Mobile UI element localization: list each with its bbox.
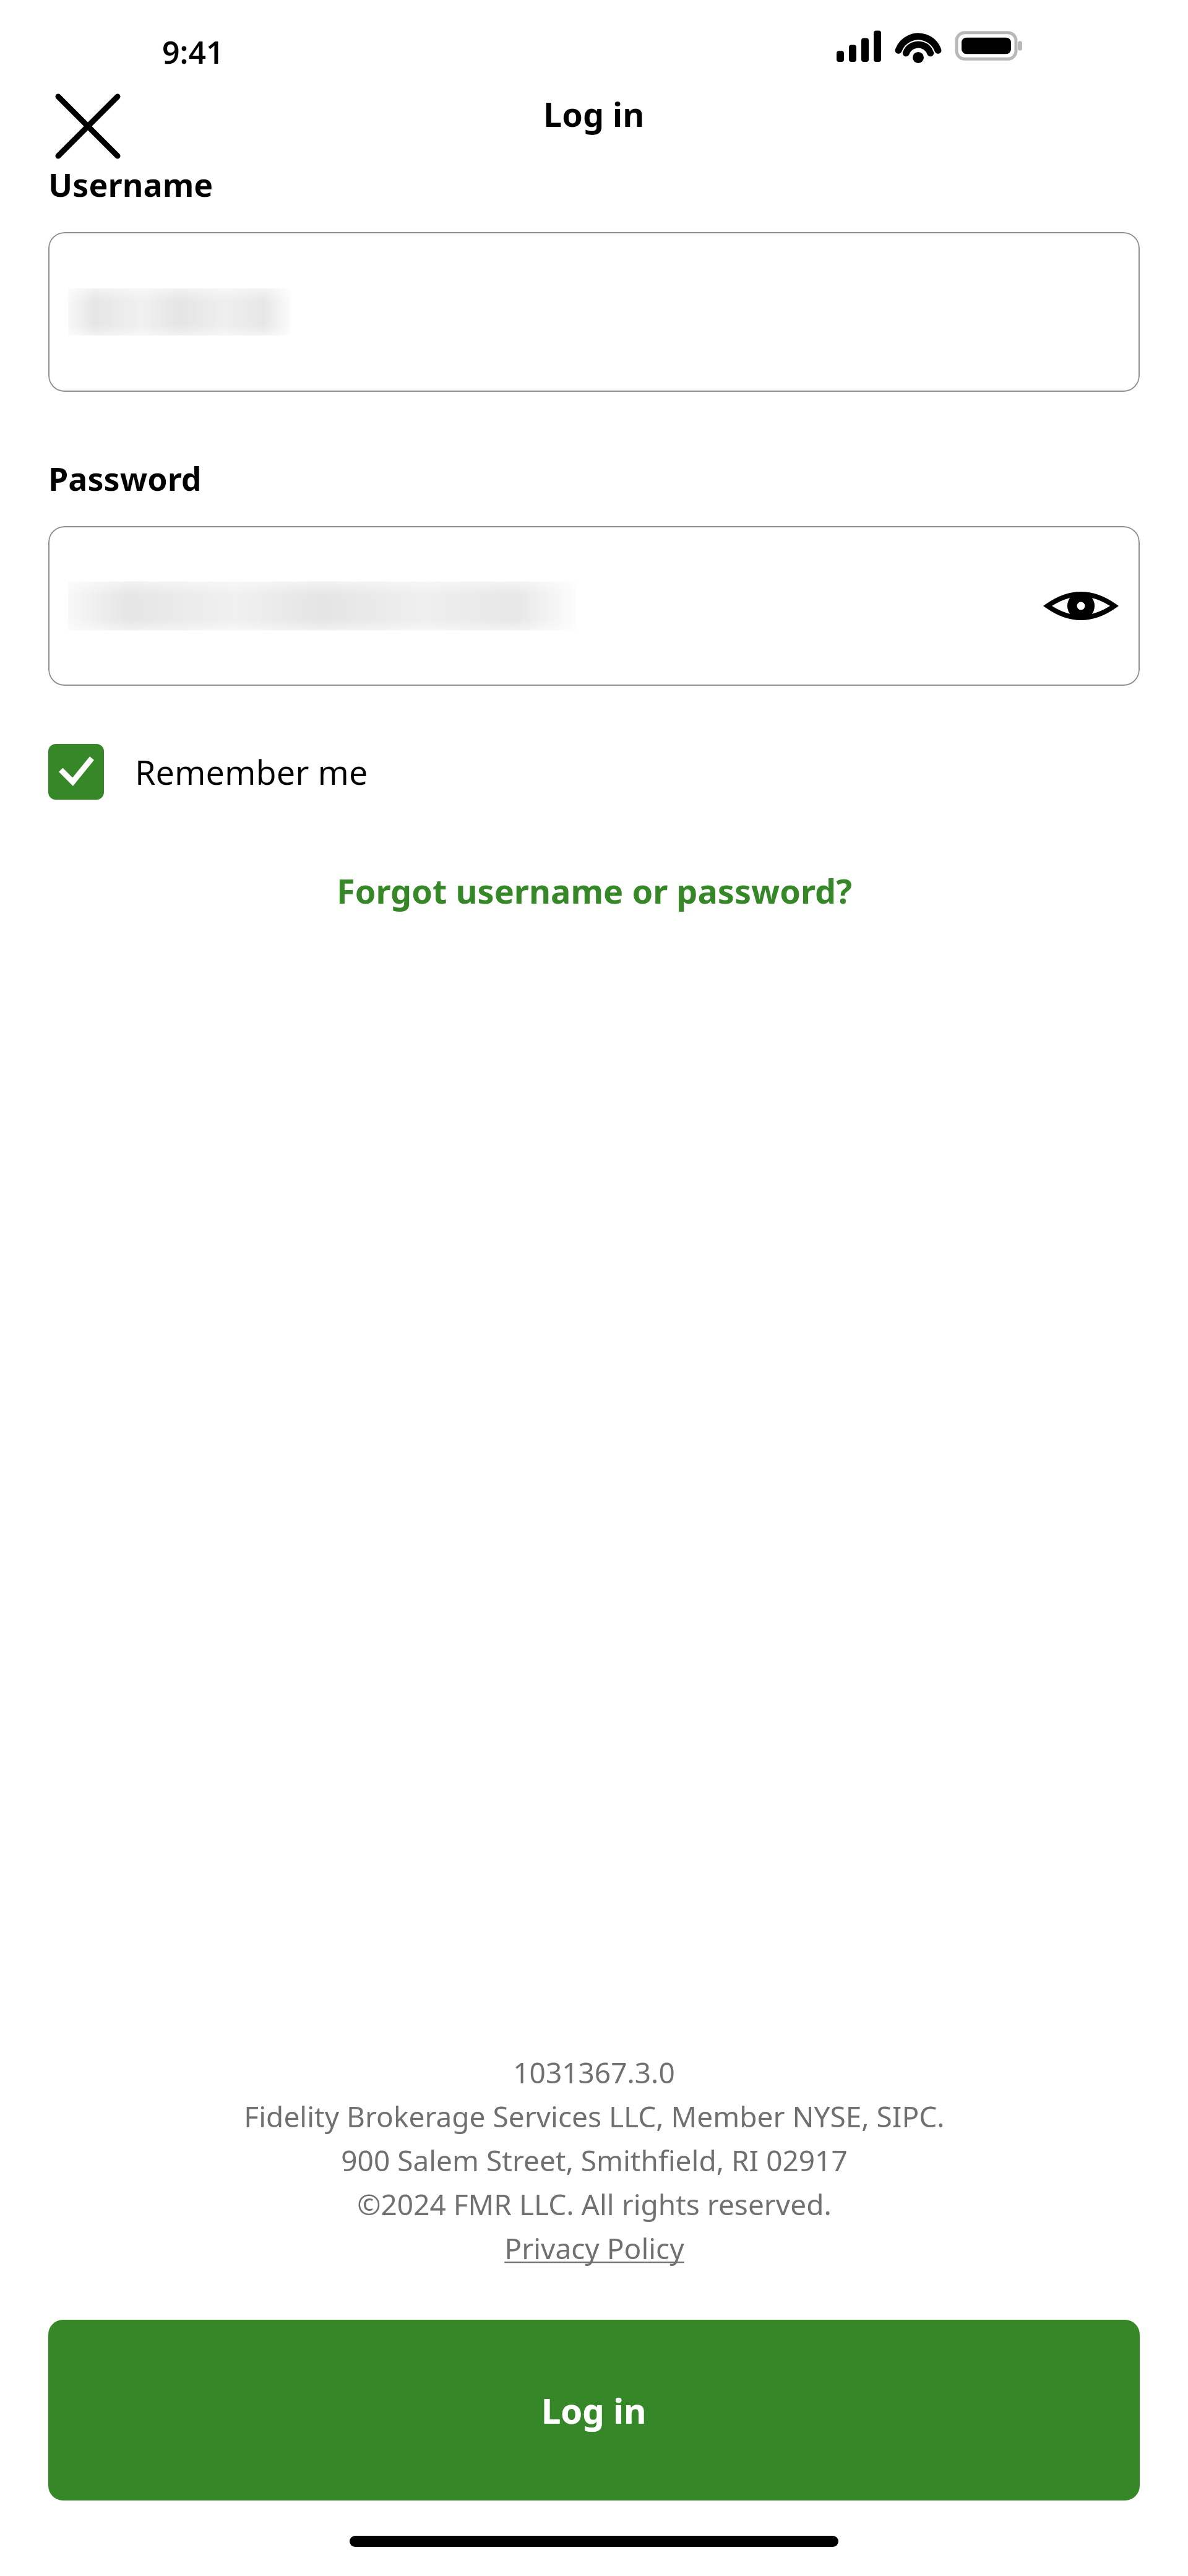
button[interactable]: Show password (48, 526, 1140, 686)
staticText: Log in (543, 91, 645, 137)
staticText: 1031367.3.0 (513, 2053, 675, 2092)
staticText: Password (48, 456, 202, 500)
staticText: Fidelity Brokerage Services LLC, Member … (244, 2097, 945, 2136)
staticText: 900 Salem Street, Smithfield, RI 02917 (341, 2141, 848, 2180)
staticText: Privacy Policy (504, 2229, 684, 2268)
button[interactable]: Forgot username or password? (0, 868, 1188, 914)
button[interactable]: Remember me (48, 744, 368, 800)
button[interactable]: Privacy Policy (504, 2229, 684, 2268)
button[interactable]: Close (45, 84, 131, 168)
staticText: 9:41 (162, 31, 224, 73)
staticText: Username (48, 162, 213, 206)
staticText: Forgot username or password? (337, 868, 852, 914)
staticText: Log in (541, 2387, 647, 2434)
staticText: ©2024 FMR LLC. All rights reserved. (357, 2185, 832, 2224)
button[interactable] (48, 232, 1140, 392)
staticText: Remember me (135, 749, 368, 795)
button[interactable]: Show password (1041, 566, 1121, 646)
button[interactable]: Log in (48, 2320, 1140, 2500)
